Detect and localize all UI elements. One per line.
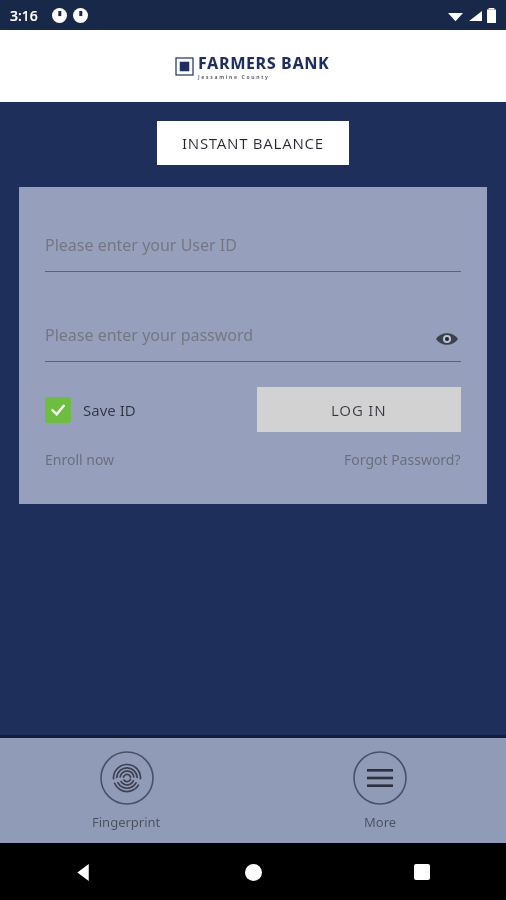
button[interactable]: Recent apps — [402, 852, 442, 892]
staticText: Please enter your password — [45, 324, 254, 346]
staticText: LOG IN — [331, 400, 387, 420]
staticText: More — [364, 813, 397, 831]
button[interactable]: Show password — [433, 325, 461, 353]
staticText: Fingerprint — [92, 813, 161, 831]
button[interactable]: Forgot Password? — [344, 450, 461, 469]
button[interactable]: Fingerprint login — [74, 745, 179, 837]
staticText: Please enter your User ID — [45, 234, 237, 256]
button[interactable]: INSTANT BALANCE — [157, 121, 349, 165]
button[interactable]: Home — [233, 852, 273, 892]
staticText: Save ID — [83, 400, 136, 420]
button[interactable]: LOG IN — [257, 387, 461, 432]
button[interactable]: Please enter your User ID — [45, 234, 461, 272]
staticText: Enroll now — [45, 450, 115, 469]
button[interactable]: Back — [64, 852, 104, 892]
button[interactable]: Enroll now — [45, 450, 115, 469]
button[interactable]: Please enter your password — [45, 324, 461, 362]
staticText: 3:16 — [10, 6, 38, 25]
staticText: INSTANT BALANCE — [182, 133, 324, 153]
button[interactable]: Save ID — [45, 397, 136, 423]
staticText: FARMERS BANK — [198, 52, 330, 74]
staticText: Forgot Password? — [344, 450, 461, 469]
staticText: J e s s a m i n e C o u n t y — [198, 74, 269, 81]
button[interactable]: More options — [335, 745, 425, 837]
